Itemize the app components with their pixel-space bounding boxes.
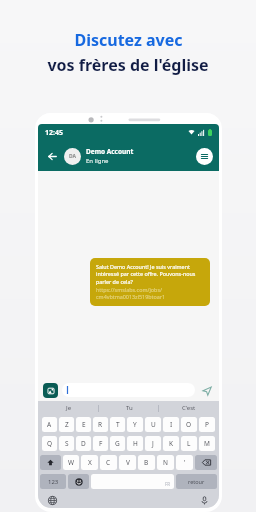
button[interactable]: retour [176,474,217,489]
button[interactable]: 123 [40,474,66,489]
staticText: En ligne [86,157,109,165]
staticText: ' [184,458,186,467]
button[interactable]: DA [64,147,196,165]
button[interactable]: Menu [196,148,213,165]
staticText: retour [188,478,205,485]
button[interactable]: A [42,417,57,432]
button[interactable]: D [76,436,91,451]
staticText: M [204,439,210,448]
button[interactable]: G [110,436,125,451]
button[interactable]: U [145,417,161,432]
staticText: L [187,439,191,448]
staticText: T [116,420,120,429]
button[interactable]: ' [176,455,193,470]
button[interactable]: Z [59,417,74,432]
button[interactable]: Shift [40,455,61,470]
staticText: Q [47,439,53,448]
button[interactable] [62,383,195,397]
button[interactable]: P [199,417,215,432]
staticText: 123 [48,478,59,486]
staticText: E [82,420,86,429]
button[interactable]: Y [127,417,143,432]
button[interactable]: X [81,455,98,470]
button[interactable]: Tu [99,401,159,415]
button[interactable]: Send [199,383,214,398]
staticText: Tu [126,404,133,412]
staticText: U [151,420,156,429]
button[interactable]: E [76,417,91,432]
staticText: FR [165,481,171,487]
staticText: D [81,439,86,448]
staticText: I [170,420,173,429]
button[interactable]: H [127,436,143,451]
staticText: https://smslabs.com/jobs/cm4vbtma0013zl5… [96,286,204,301]
button[interactable]: Q [42,436,57,451]
staticText: O [186,420,192,429]
staticText: F [99,439,103,448]
staticText: S [65,439,69,448]
staticText: 12:45 [45,128,63,138]
button[interactable]: T [110,417,125,432]
staticText: H [133,439,138,448]
button[interactable]: Voice input [198,494,210,506]
button[interactable]: S [59,436,74,451]
button[interactable]: B [138,455,155,470]
staticText: B [144,458,149,467]
button[interactable]: W [63,455,79,470]
button[interactable]: M [199,436,215,451]
staticText: Y [133,420,137,429]
button[interactable]: Change language [46,494,58,506]
button[interactable]: Attach image [43,383,58,398]
button[interactable]: Salut Demo Account! Je suis vraiment int… [90,258,210,306]
button[interactable]: R [93,417,108,432]
staticText: G [115,439,120,448]
staticText: R [98,420,103,429]
staticText: Discutez avec [74,29,183,51]
button[interactable]: V [119,455,136,470]
button[interactable]: Back [44,148,60,164]
staticText: Salut Demo Account! Je suis vraiment int… [96,263,204,286]
staticText: X [88,458,92,467]
button[interactable]: L [181,436,197,451]
staticText: W [68,458,75,467]
button[interactable]: C'est [159,401,219,415]
button[interactable]: F [93,436,108,451]
button[interactable]: C [100,455,117,470]
staticText: C'est [182,404,196,412]
button[interactable]: I [163,417,179,432]
button[interactable]: J [145,436,161,451]
staticText: A [47,420,52,429]
staticText: Demo Account [86,147,134,156]
staticText: DA [69,153,77,160]
button[interactable]: Je [38,401,99,415]
staticText: Je [66,404,72,412]
button[interactable]: K [163,436,179,451]
button[interactable]: Space [91,474,174,489]
staticText: N [163,458,168,467]
staticText: J [152,439,154,448]
staticText: K [169,439,174,448]
button[interactable]: N [157,455,174,470]
button[interactable]: Backspace [195,455,217,470]
staticText: P [205,420,209,429]
staticText: vos frères de l'église [47,54,209,76]
staticText: V [126,458,130,467]
staticText: Z [65,420,69,429]
button[interactable]: O [181,417,197,432]
button[interactable]: Emoji [68,474,89,489]
staticText: C [106,458,111,467]
